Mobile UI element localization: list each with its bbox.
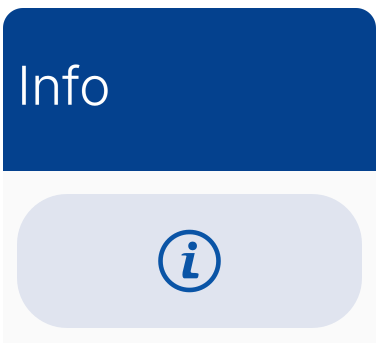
button[interactable]: Info [17, 194, 362, 328]
staticText: Info [17, 53, 111, 117]
